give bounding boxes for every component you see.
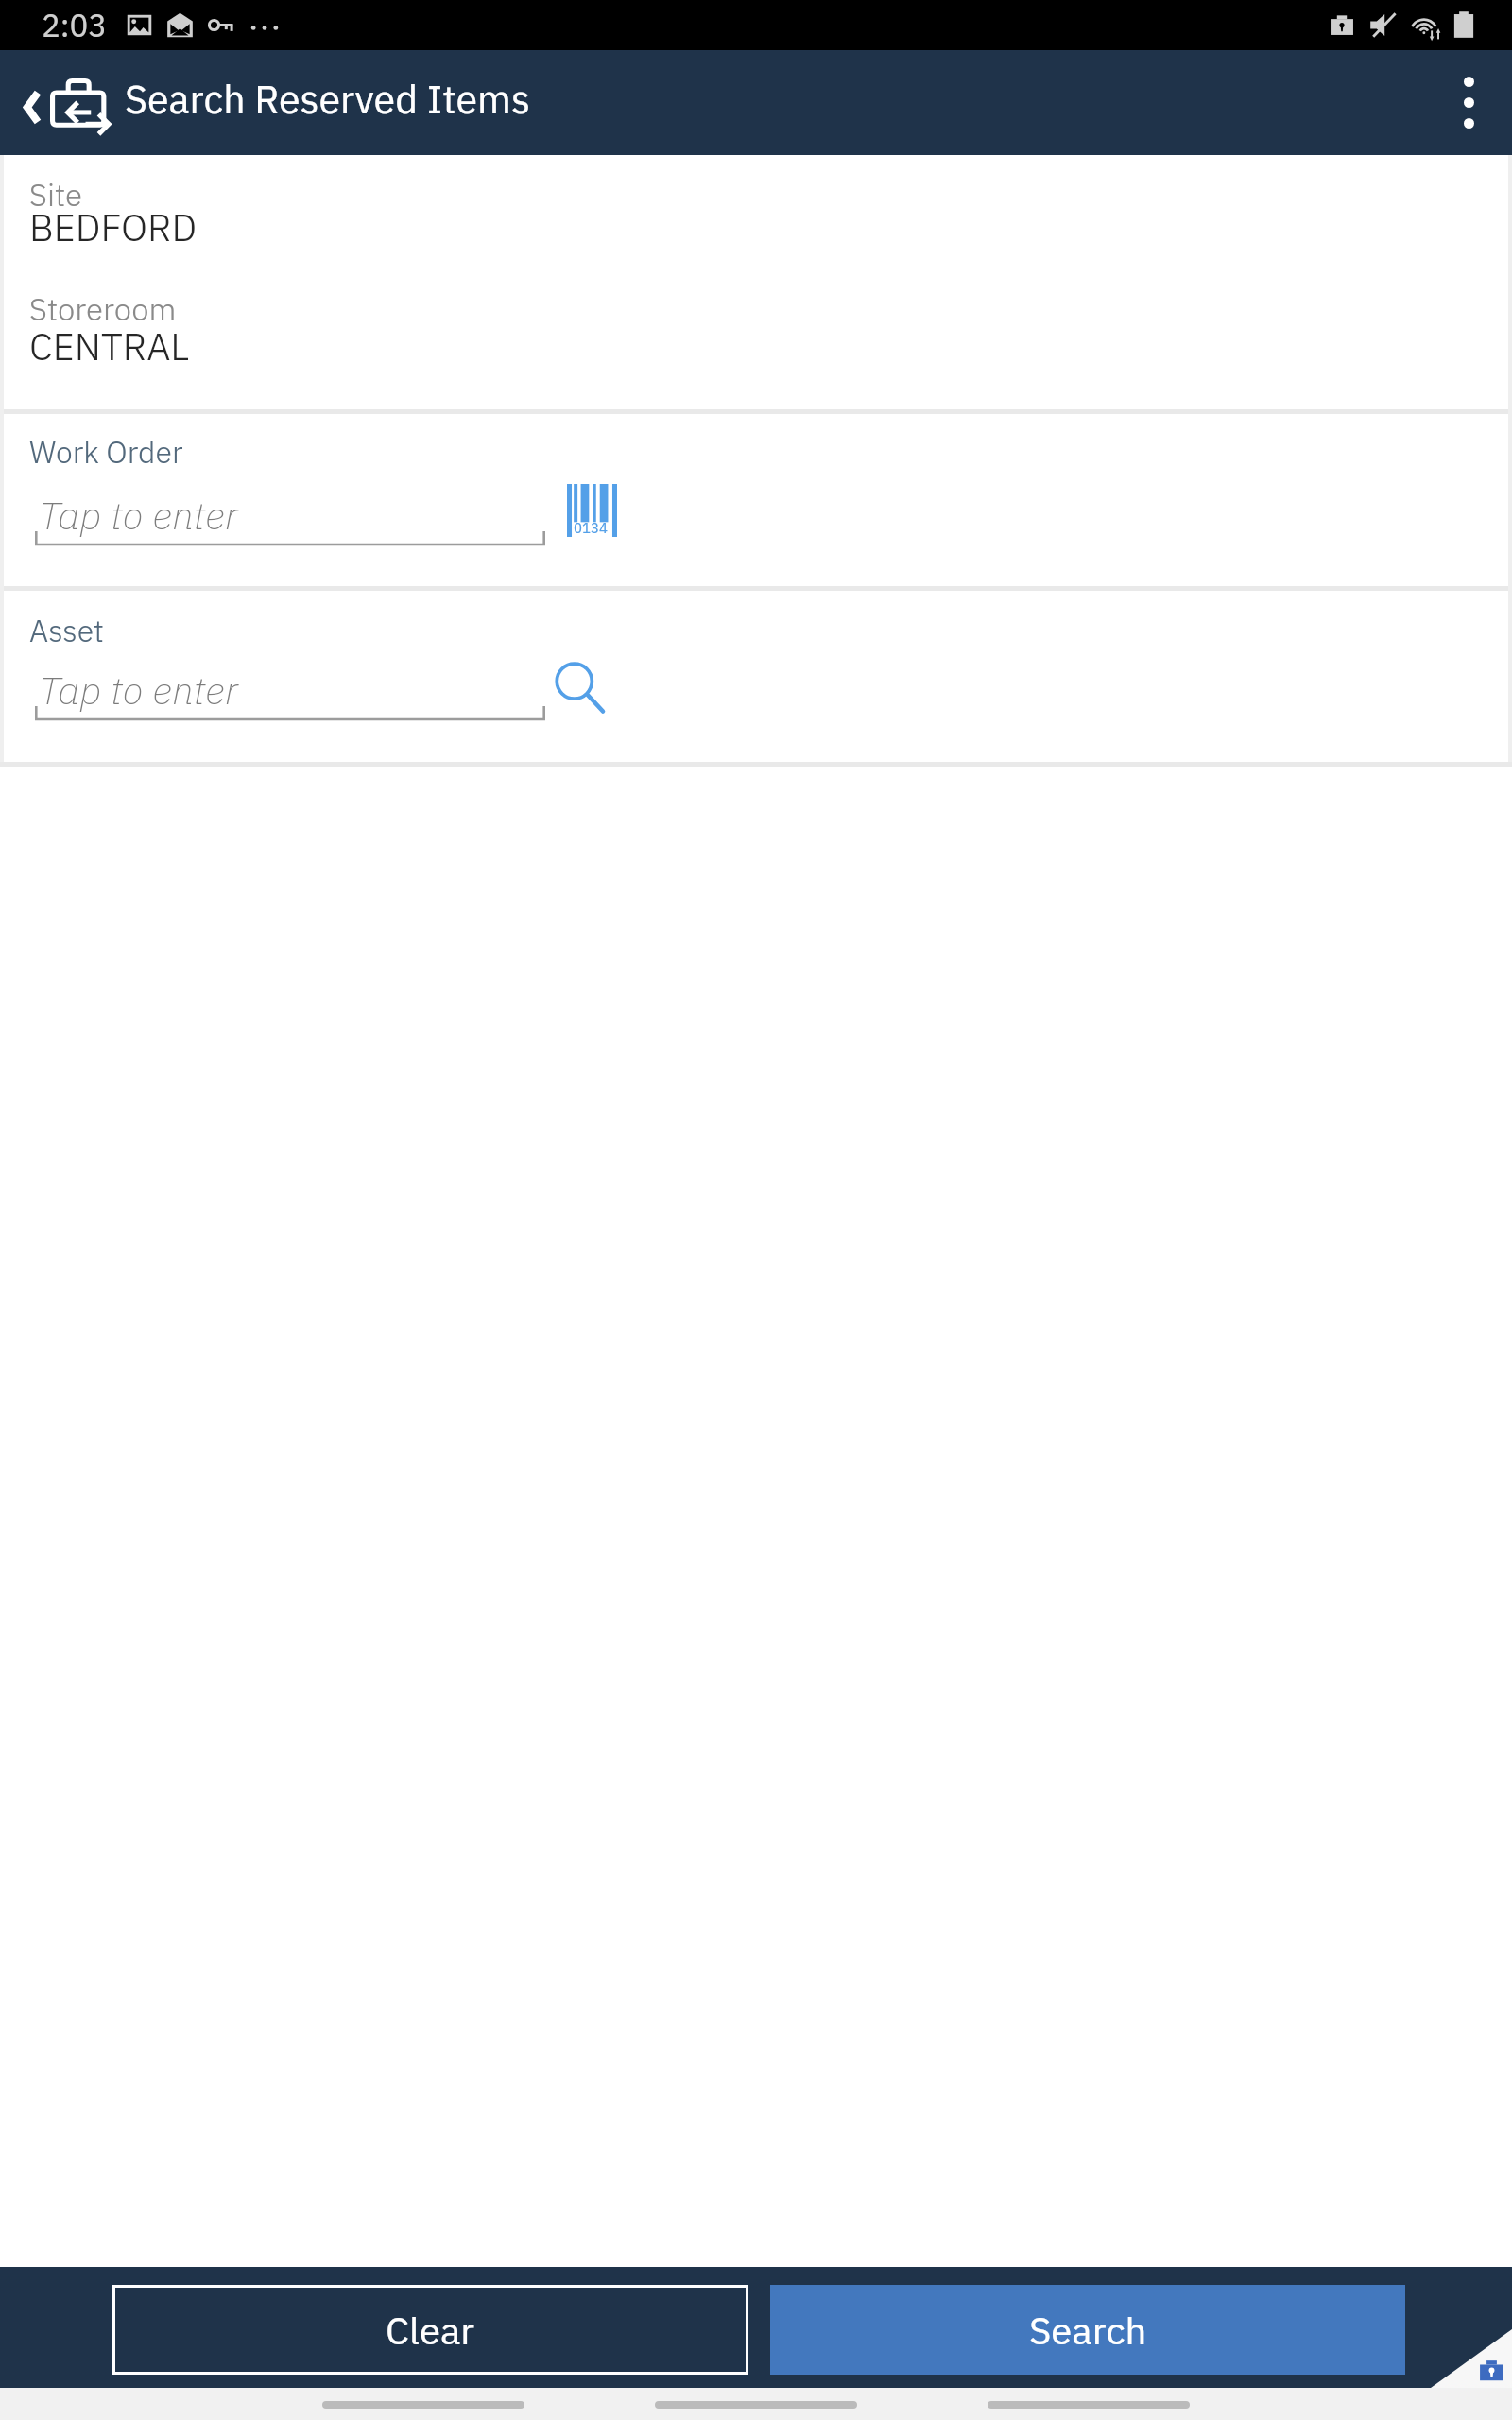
staticText: Work Order: [29, 432, 183, 472]
button[interactable]: Clear: [112, 2285, 748, 2375]
staticText: Tap to enter: [39, 490, 238, 540]
button[interactable]: Search asset: [539, 646, 620, 727]
staticText: Clear: [386, 2306, 475, 2355]
staticText: 0134: [574, 519, 609, 538]
staticText: CENTRAL: [29, 321, 190, 371]
staticText: Tap to enter: [39, 665, 238, 715]
staticText: Asset: [29, 611, 104, 650]
staticText: BEDFORD: [29, 202, 198, 251]
staticText: Site: [29, 174, 83, 215]
staticText: Storeroom: [29, 288, 177, 329]
button[interactable]: Search: [770, 2285, 1405, 2375]
button[interactable]: Back: [0, 50, 115, 155]
button[interactable]: Scan barcode: [550, 469, 633, 552]
button[interactable]: More options: [1425, 50, 1512, 155]
staticText: Search Reserved Items: [125, 74, 530, 124]
staticText: Search: [1029, 2306, 1147, 2355]
staticText: 2:03: [42, 5, 108, 45]
